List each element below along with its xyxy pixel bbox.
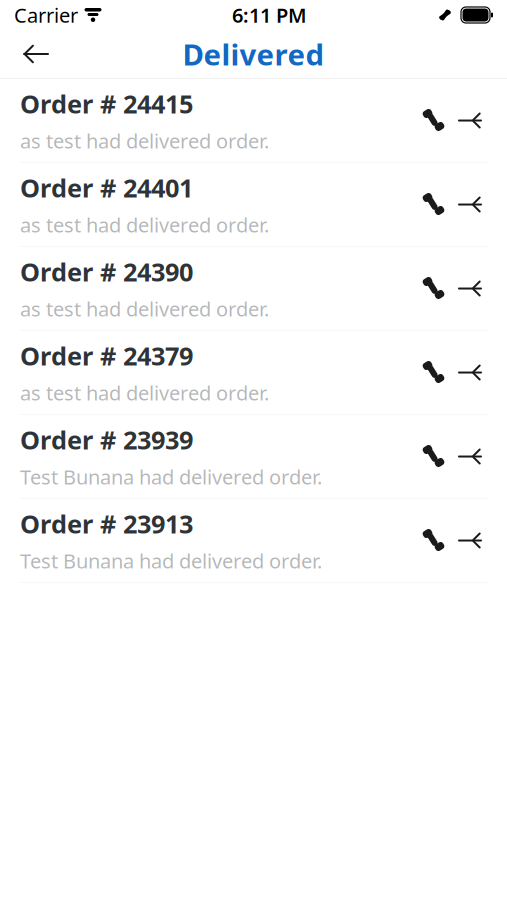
staticText: Order # 24415: [20, 87, 193, 120]
staticText: Test Bunana had delivered order.: [20, 547, 322, 574]
staticText: Delivered: [182, 34, 324, 73]
staticText: Test Bunana had delivered order.: [20, 463, 322, 490]
staticText: Order # 24379: [20, 339, 193, 372]
button[interactable]: Order # 24401: [0, 163, 507, 246]
staticText: Order # 23913: [20, 507, 193, 540]
staticText: as test had delivered order.: [20, 127, 269, 154]
button[interactable]: Order # 23939: [0, 415, 507, 498]
staticText: as test had delivered order.: [20, 211, 269, 238]
staticText: Order # 24401: [20, 171, 193, 204]
staticText: Order # 23939: [20, 423, 193, 456]
staticText: as test had delivered order.: [20, 295, 269, 322]
staticText: Order # 24390: [20, 255, 193, 288]
staticText: 6:11 PM: [232, 2, 307, 28]
button[interactable]: Order # 24390: [0, 247, 507, 330]
button[interactable]: Order # 24415: [0, 79, 507, 162]
staticText: as test had delivered order.: [20, 379, 269, 406]
button[interactable]: Back: [12, 30, 60, 78]
button[interactable]: Order # 24379: [0, 331, 507, 414]
staticText: Carrier: [14, 2, 78, 28]
button[interactable]: Order # 23913: [0, 499, 507, 582]
